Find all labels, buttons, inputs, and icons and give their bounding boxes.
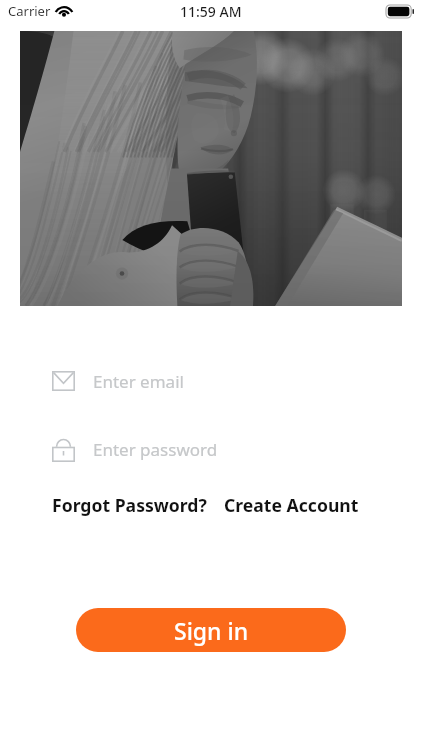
staticText: Enter password [93, 438, 218, 461]
button[interactable]: Forgot Password? [52, 493, 207, 517]
staticText: Create Account [224, 493, 359, 517]
button[interactable]: Create Account [224, 493, 359, 517]
staticText: Enter email [93, 370, 184, 393]
button[interactable]: Enter password [52, 432, 422, 466]
button[interactable]: Sign in [76, 608, 346, 652]
staticText: Carrier [8, 2, 51, 20]
staticText: Forgot Password? [52, 493, 207, 517]
button[interactable]: Enter email [52, 364, 422, 398]
staticText: Sign in [174, 615, 249, 646]
staticText: 11:59 AM [180, 2, 242, 21]
